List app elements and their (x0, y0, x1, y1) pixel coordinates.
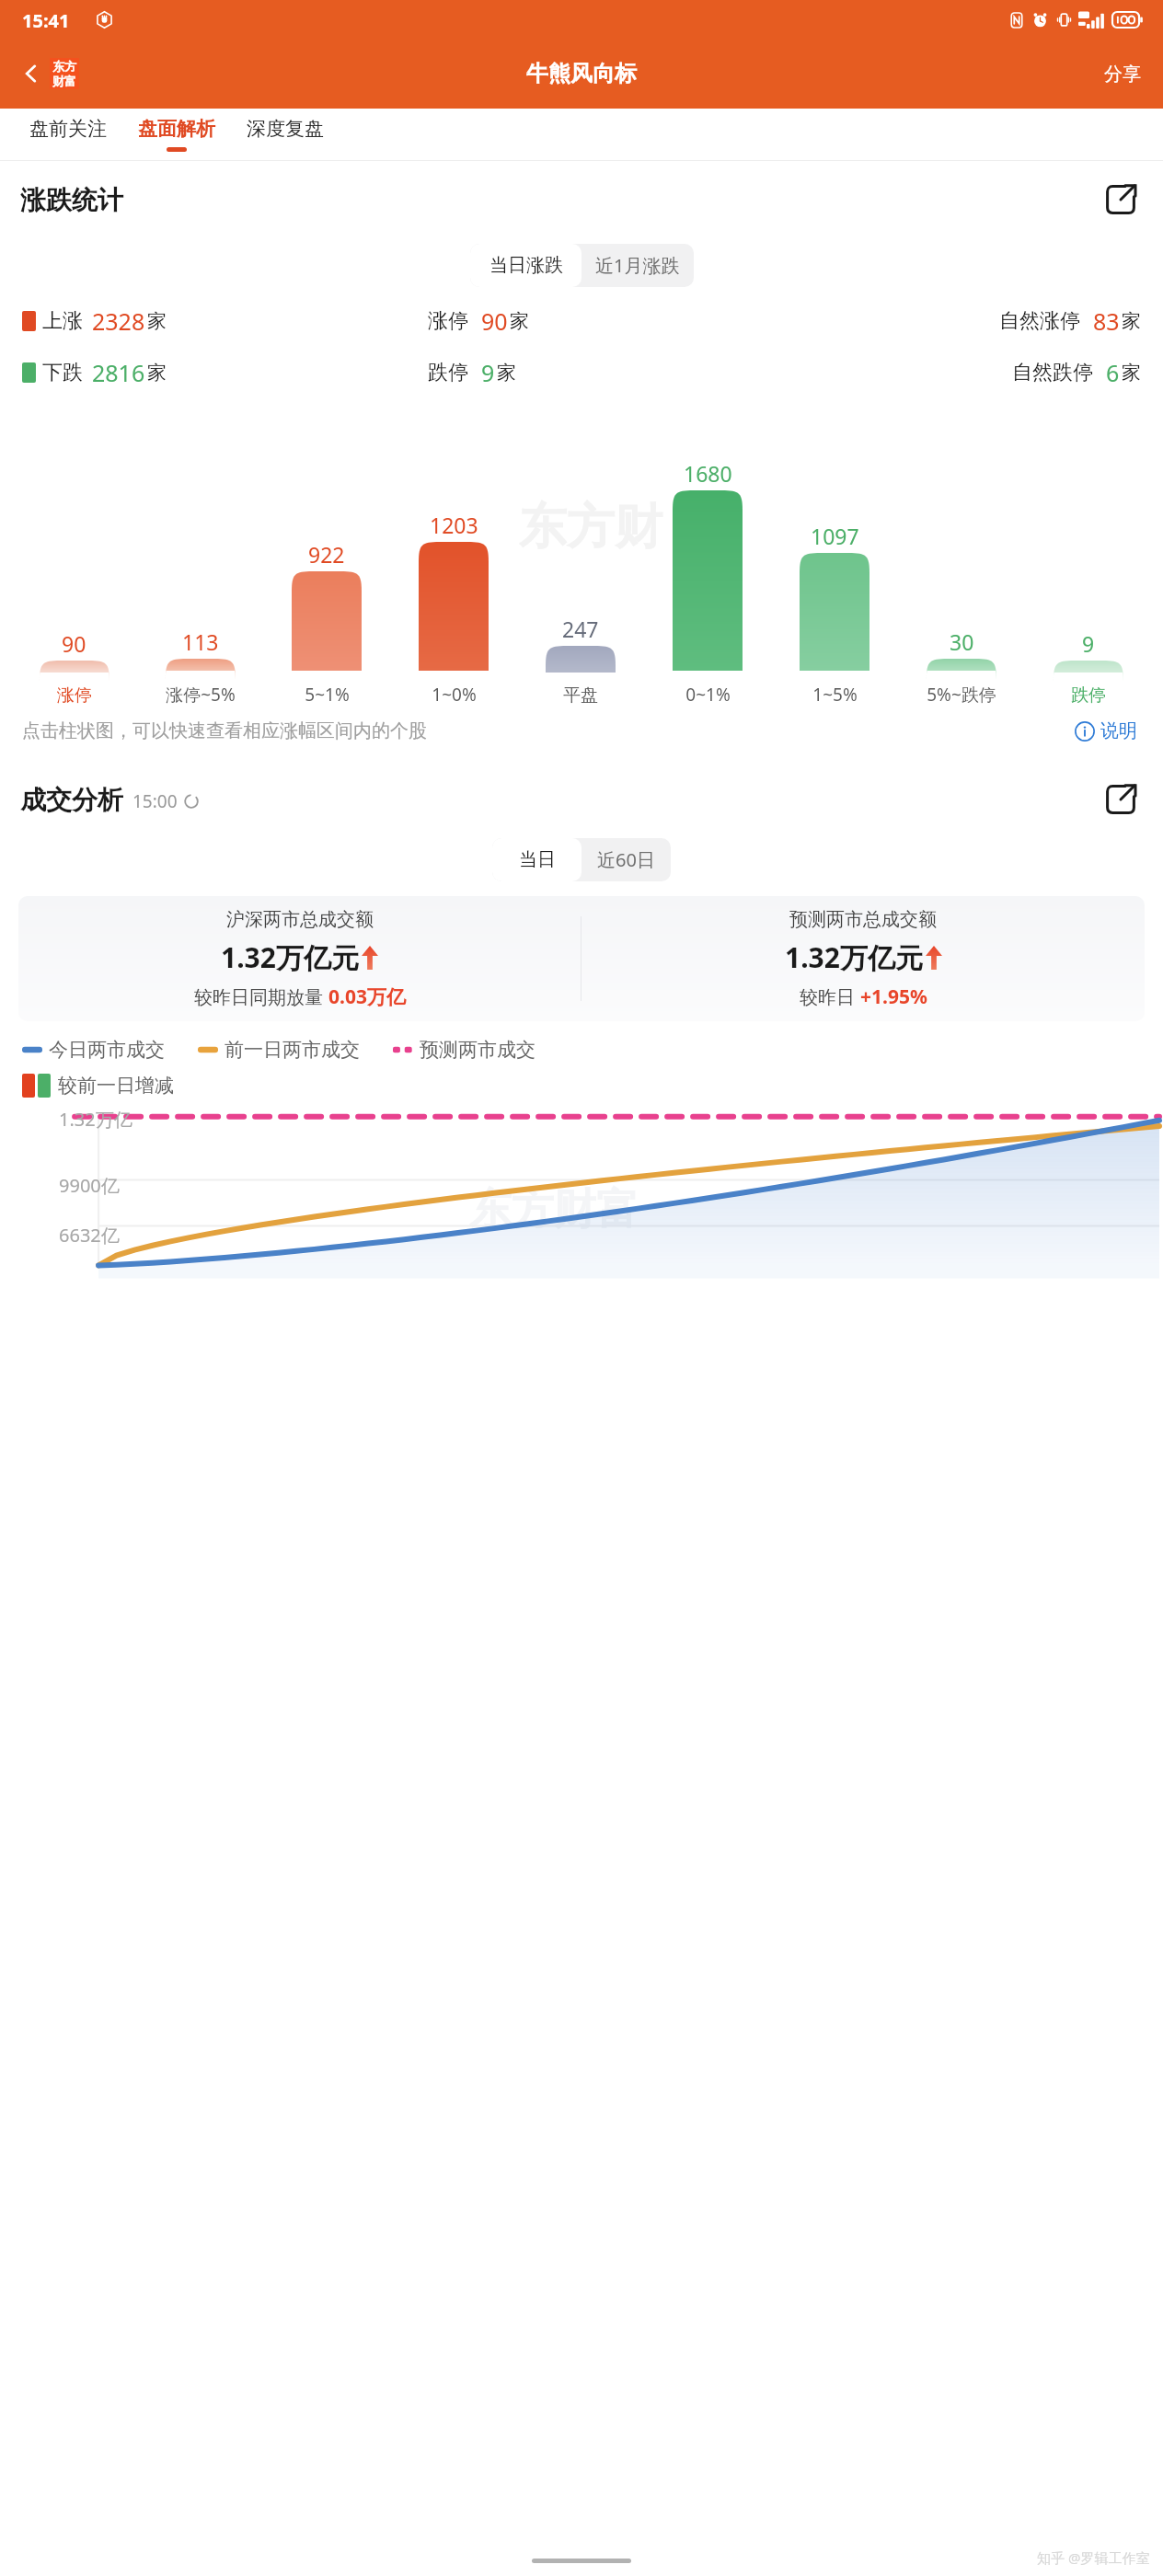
staticText: 盘前关注 (29, 117, 107, 141)
staticText: 知乎 @罗辑工作室 (1037, 2548, 1150, 2567)
staticText: 2328 (92, 305, 145, 337)
staticText: 自然跌停 (1012, 360, 1093, 385)
button[interactable]: Back to 东方财富 (17, 52, 83, 95)
staticText: 涨停~5% (166, 683, 236, 707)
staticText: 点击柱状图，可以快速查看相应涨幅区间内的个股 (22, 719, 427, 742)
staticText: 1.32万亿元 (221, 938, 359, 976)
staticText: 沪深两市总成交额 (226, 908, 374, 931)
staticText: 0~1% (685, 683, 731, 707)
staticText: 6 (1106, 357, 1120, 388)
staticText: 家 (510, 309, 529, 333)
button[interactable]: 预测两市总成交额 (581, 896, 1145, 1021)
button[interactable]: 当日 (492, 838, 581, 881)
staticText: 平盘 (563, 684, 598, 707)
staticText: 上涨 (42, 308, 83, 334)
staticText: 30 (950, 627, 974, 656)
other: Back (20, 63, 42, 85)
button[interactable]: 近60日 (581, 838, 671, 881)
button[interactable]: 盘面解析 (129, 117, 225, 152)
staticText: 家 (147, 309, 167, 333)
button[interactable]: Open in new window (1099, 178, 1143, 222)
staticText: 较前一日增减 (58, 1074, 174, 1098)
staticText: 当日 (519, 848, 556, 871)
staticText: 9 (481, 357, 495, 388)
staticText: 财富 (52, 74, 76, 88)
staticText: 1680 (684, 459, 732, 488)
staticText: 较昨日同期放量 (194, 984, 328, 1009)
staticText: 6632亿 (59, 1223, 120, 1248)
staticText: 1~0% (432, 683, 477, 707)
staticText: 家 (147, 361, 167, 385)
button[interactable]: Open in new window (1099, 777, 1143, 822)
staticText: 247 (562, 615, 599, 643)
staticText: 0.03万亿 (328, 983, 406, 1010)
staticText: 东方财富 (469, 1183, 639, 1236)
button[interactable]: 涨停 (40, 661, 109, 673)
staticText: 涨停 (57, 684, 92, 707)
staticText: 922 (308, 540, 345, 569)
staticText: 今日两市成交 (49, 1038, 165, 1062)
staticText: 1.32万亿 (59, 1107, 132, 1132)
staticText: 83 (1093, 305, 1120, 337)
staticText: 5%~跌停 (927, 683, 996, 707)
button[interactable]: Refresh (183, 793, 200, 810)
staticText: 涨停 (428, 308, 468, 334)
button[interactable]: 涨停~5% (166, 659, 236, 671)
staticText: 自然涨停 (999, 308, 1080, 334)
staticText: 跌停 (1071, 684, 1106, 707)
staticText: 牛熊风向标 (526, 60, 637, 87)
button[interactable]: 0~1% (673, 490, 743, 671)
staticText: 5~1% (305, 683, 350, 707)
staticText: 15:00 (132, 789, 178, 813)
staticText: 预测两市成交 (420, 1038, 535, 1062)
staticText: 9900亿 (59, 1173, 120, 1198)
staticText: 家 (497, 361, 516, 385)
staticText: 113 (182, 627, 219, 656)
button[interactable]: 盘前关注 (20, 117, 116, 152)
staticText: 成交分析 (20, 784, 123, 816)
staticText: 1~5% (812, 683, 858, 707)
staticText: 下跌 (42, 360, 83, 385)
staticText: 东方财 (519, 497, 662, 558)
staticText: 近1月涨跌 (595, 253, 680, 278)
staticText: 9 (1082, 629, 1095, 658)
button[interactable]: 分享 (1099, 55, 1146, 93)
staticText: 1097 (811, 522, 859, 550)
staticText: 预测两市总成交额 (789, 908, 937, 931)
staticText: 东方 (52, 59, 76, 74)
staticText: 15:41 (22, 8, 70, 33)
staticText: 跌停 (428, 360, 468, 385)
staticText: 2816 (92, 357, 145, 388)
staticText: 近60日 (597, 847, 655, 872)
button[interactable]: 当日涨跌 (470, 244, 581, 287)
button[interactable]: 1~5% (800, 553, 869, 671)
staticText: 家 (1122, 361, 1141, 385)
button[interactable]: 深度复盘 (237, 117, 333, 152)
button[interactable]: 5%~跌停 (927, 659, 996, 671)
staticText: 说明 (1100, 719, 1137, 742)
button[interactable]: 5~1% (292, 571, 362, 671)
button[interactable]: 平盘 (546, 646, 616, 673)
button[interactable]: 说明 (1071, 716, 1141, 746)
button[interactable]: 1~0% (419, 542, 489, 671)
staticText: 1203 (430, 511, 478, 539)
staticText: 家 (1122, 309, 1141, 333)
staticText: 当日涨跌 (489, 254, 563, 277)
staticText: 盘面解析 (138, 117, 215, 141)
staticText: 涨跌统计 (20, 184, 123, 216)
staticText: +1.95% (860, 983, 927, 1010)
button[interactable]: 跌停 (1054, 661, 1123, 673)
button[interactable]: 近1月涨跌 (581, 244, 694, 287)
button[interactable]: 沪深两市总成交额 (18, 896, 581, 1021)
staticText: 较昨日 (800, 984, 860, 1009)
staticText: 90 (62, 629, 86, 658)
staticText: 深度复盘 (247, 117, 324, 141)
staticText: 1.32万亿元 (785, 938, 923, 976)
staticText: 前一日两市成交 (225, 1038, 360, 1062)
staticText: 90 (481, 305, 508, 337)
